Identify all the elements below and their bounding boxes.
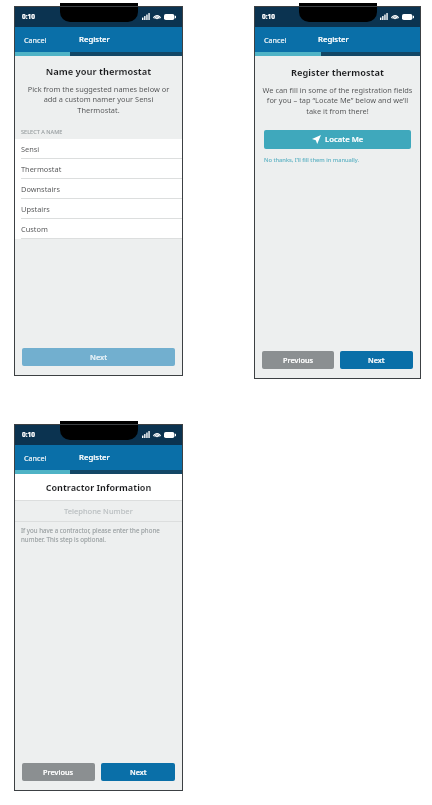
staticText: Previous (283, 355, 314, 365)
staticText: Telephone Number (64, 506, 133, 516)
button[interactable]: Next (101, 763, 175, 781)
button[interactable]: Previous (22, 763, 95, 781)
staticText: Next (90, 352, 108, 362)
button[interactable]: Cancel (20, 450, 51, 466)
staticText: Pick from the suggested names below or a… (22, 84, 175, 115)
staticText: Custom (21, 224, 48, 234)
button[interactable]: Previous (262, 351, 334, 369)
staticText: Cancel (24, 453, 47, 463)
staticText: Thermostat (21, 164, 62, 174)
button[interactable]: Thermostat (14, 159, 183, 179)
button[interactable]: Cancel (20, 32, 51, 48)
staticText: Register (79, 34, 110, 45)
other: Locate Me (312, 135, 321, 144)
button[interactable]: Telephone Number (14, 501, 183, 521)
button[interactable]: Cancel (260, 32, 291, 48)
button[interactable]: Sensi (14, 139, 183, 159)
button[interactable]: Upstairs (14, 199, 183, 219)
staticText: 0:10 (22, 430, 35, 439)
staticText: Locate Me (325, 134, 364, 145)
button[interactable]: Custom (14, 219, 183, 239)
staticText: Contractor Information (14, 481, 183, 493)
staticText: No thanks, I’ll fill them in manually. (264, 156, 360, 164)
staticText: Sensi (21, 144, 40, 154)
staticText: 0:10 (262, 12, 275, 21)
staticText: Next (130, 767, 147, 777)
staticText: Upstairs (21, 204, 50, 214)
staticText: Register (318, 34, 349, 45)
button[interactable]: Locate Me (264, 130, 411, 149)
button[interactable]: Next (340, 351, 413, 369)
button[interactable]: No thanks, I’ll fill them in manually. (264, 156, 411, 164)
staticText: 0:10 (22, 12, 35, 21)
staticText: Register (79, 452, 110, 463)
staticText: Cancel (264, 35, 287, 45)
staticText: Next (368, 355, 385, 365)
button[interactable]: Downstairs (14, 179, 183, 199)
staticText: Previous (43, 767, 74, 777)
button[interactable]: Next (22, 348, 175, 366)
staticText: Register thermostat (254, 66, 421, 79)
staticText: Cancel (24, 35, 47, 45)
staticText: We can fill in some of the registration … (261, 85, 414, 116)
staticText: SELECT A NAME (21, 128, 63, 136)
staticText: Downstairs (21, 184, 60, 194)
staticText: Name your thermostat (14, 65, 183, 78)
staticText: If you have a contractor, please enter t… (21, 526, 176, 544)
